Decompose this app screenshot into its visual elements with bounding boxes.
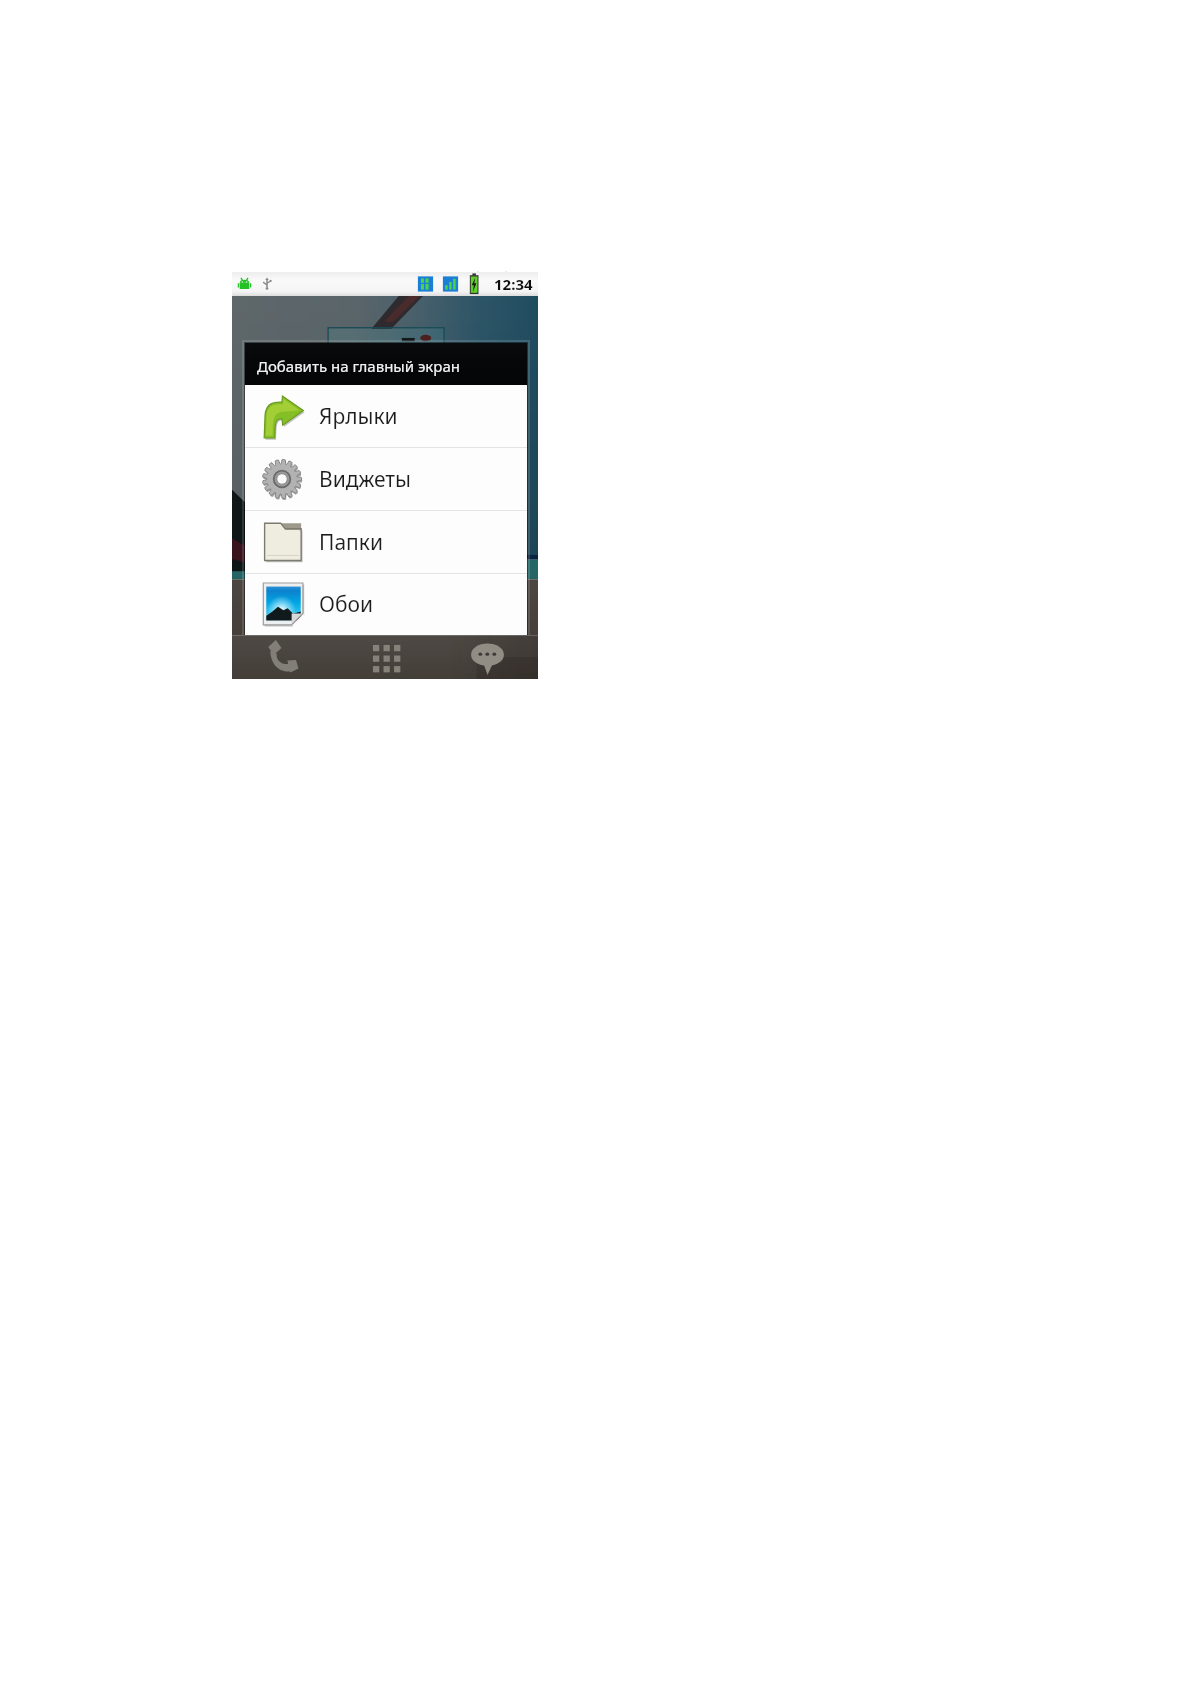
staticText: Ярлыки <box>319 402 398 431</box>
button[interactable]: Обои <box>245 574 527 635</box>
button[interactable]: Виджеты <box>245 448 527 510</box>
staticText: Обои <box>319 590 374 619</box>
staticText: Виджеты <box>319 465 412 494</box>
staticText: Добавить на главный экран <box>257 356 460 376</box>
staticText: Папки <box>319 528 383 557</box>
button[interactable]: Messaging <box>436 635 538 679</box>
staticText: 12:34 <box>494 274 533 294</box>
button[interactable]: Папки <box>245 511 527 573</box>
button[interactable]: Ярлыки <box>245 385 527 447</box>
button[interactable]: Phone <box>232 635 334 679</box>
button[interactable]: All apps <box>334 635 436 679</box>
